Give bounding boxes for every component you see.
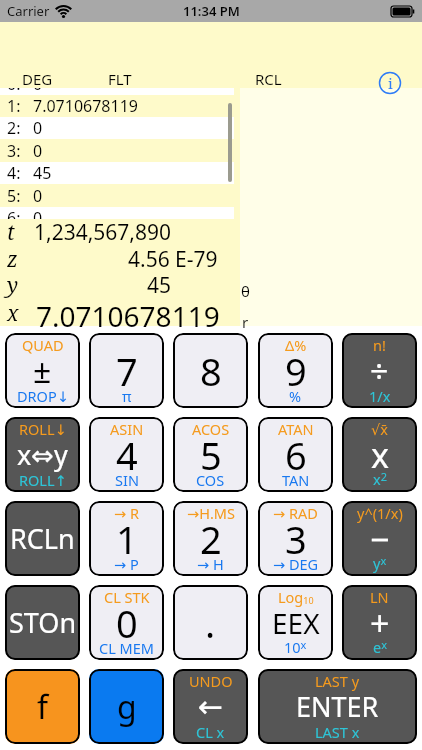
button[interactable]: → R <box>89 501 164 576</box>
staticText: θ <box>241 281 250 301</box>
staticText: LAST x <box>315 722 360 742</box>
staticText: 6 <box>285 429 307 481</box>
staticText: DEG <box>22 69 53 89</box>
staticText: 0 <box>116 597 138 649</box>
staticText: ROLL↓ <box>19 419 67 439</box>
staticText: 8 <box>200 345 222 397</box>
staticText: → DEG <box>273 554 319 574</box>
button[interactable]: f <box>5 669 80 744</box>
staticText: RCLn <box>10 520 75 557</box>
button[interactable]: ROLL↓ <box>5 417 80 492</box>
staticText: → R <box>114 503 139 523</box>
staticText: RCL <box>255 69 282 89</box>
staticText: DROP↓ <box>17 386 69 406</box>
staticText: ATAN <box>278 419 314 439</box>
staticText: ex <box>373 637 387 658</box>
button[interactable]: STOn <box>5 585 80 660</box>
staticText: y <box>7 271 19 300</box>
staticText: 45 <box>147 271 172 297</box>
staticText: COS <box>196 470 225 490</box>
button[interactable]: QUAD <box>5 333 80 408</box>
staticText: . <box>205 597 216 649</box>
staticText: FLT <box>108 69 132 89</box>
button[interactable]: i <box>378 71 402 95</box>
staticText: ASIN <box>110 419 144 439</box>
button[interactable]: 2: <box>0 117 234 139</box>
button[interactable]: y^(1/x) <box>342 501 417 576</box>
staticText: 0 <box>33 185 43 207</box>
button[interactable]: RCLn <box>5 501 80 576</box>
staticText: 2 <box>200 513 222 565</box>
staticText: x2 <box>373 469 387 490</box>
staticText: t <box>7 218 15 247</box>
button[interactable]: CL STK <box>89 585 164 660</box>
staticText: 1 <box>116 513 138 565</box>
staticText: SIN <box>115 470 139 490</box>
staticText: QUAD <box>22 335 64 355</box>
staticText: 4: <box>7 162 21 184</box>
button[interactable]: 8 <box>173 333 248 408</box>
button[interactable]: ATAN <box>258 417 333 492</box>
button[interactable]: . <box>173 585 248 660</box>
button[interactable]: LN <box>342 585 417 660</box>
staticText: CL MEM <box>99 638 154 658</box>
staticText: f <box>37 685 49 729</box>
staticText: LAST y <box>315 671 360 691</box>
button[interactable]: 4: <box>0 162 234 184</box>
button[interactable]: →H.MS <box>173 501 248 576</box>
staticText: ± <box>33 349 52 393</box>
button[interactable]: → RAD <box>258 501 333 576</box>
button[interactable]: ASIN <box>89 417 164 492</box>
staticText: i <box>388 73 393 93</box>
button[interactable]: √x̄ <box>342 417 417 492</box>
staticText: CL x <box>196 722 225 742</box>
staticText: STOn <box>9 604 77 641</box>
staticText: 1,234,567,890 <box>34 218 172 244</box>
button[interactable]: n! <box>342 333 417 408</box>
staticText: 9 <box>285 345 307 397</box>
button[interactable]: UNDO <box>173 669 248 744</box>
staticText: Log10 <box>278 587 314 607</box>
staticText: 7.0710678119 <box>33 95 138 117</box>
staticText: 0 <box>33 207 43 219</box>
staticText: 3 <box>285 513 307 565</box>
staticText: x⇔y <box>17 436 68 473</box>
staticText: → RAD <box>273 503 318 523</box>
button[interactable]: LAST y <box>258 669 417 744</box>
button[interactable]: 5: <box>0 185 234 207</box>
staticText: 6: <box>7 207 21 219</box>
staticText: ÷ <box>370 349 389 393</box>
staticText: + <box>370 600 390 646</box>
staticText: π <box>122 386 132 406</box>
button[interactable]: g <box>89 669 164 744</box>
staticText: LN <box>370 587 389 607</box>
button[interactable]: 7 <box>89 333 164 408</box>
staticText: ROLL↑ <box>19 470 67 490</box>
staticText: → P <box>114 554 139 574</box>
button[interactable]: 6: <box>0 207 234 219</box>
staticText: 0 <box>33 140 43 162</box>
staticText: x <box>371 432 389 478</box>
staticText: ← <box>198 689 224 724</box>
staticText: r <box>242 312 249 332</box>
staticText: z <box>7 245 18 274</box>
button[interactable]: Δ% <box>258 333 333 408</box>
button[interactable]: ACOS <box>173 417 248 492</box>
button[interactable]: 3: <box>0 140 234 162</box>
staticText: 45 <box>33 162 52 184</box>
staticText: y^(1/x) <box>357 503 403 523</box>
staticText: ACOS <box>192 419 230 439</box>
staticText: 4 <box>116 429 138 481</box>
staticText: 7.0710678119 <box>36 297 220 327</box>
staticText: Δ% <box>285 335 307 355</box>
staticText: →H.MS <box>187 503 235 523</box>
button[interactable]: 0: <box>0 88 234 95</box>
staticText: x <box>7 299 19 328</box>
button[interactable]: Log10 <box>258 585 333 660</box>
staticText: n! <box>373 335 386 355</box>
button[interactable]: 1: <box>0 95 234 117</box>
staticText: 10x <box>284 637 307 658</box>
staticText: 11:34 PM <box>183 2 240 20</box>
staticText: 7 <box>116 345 138 397</box>
staticText: UNDO <box>189 671 233 691</box>
